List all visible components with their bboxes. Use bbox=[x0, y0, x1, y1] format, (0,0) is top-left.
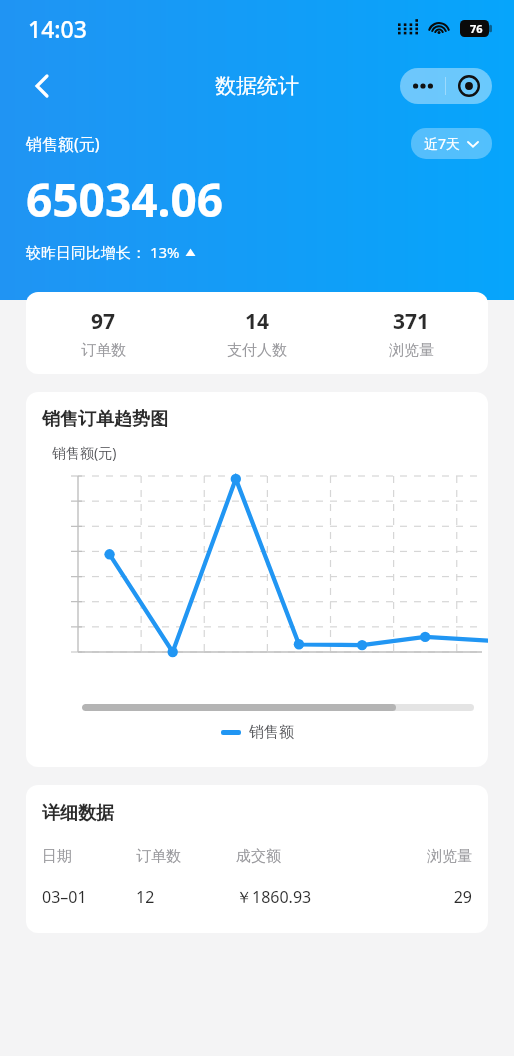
button[interactable]: 03–01 bbox=[26, 886, 488, 908]
button[interactable]: Target bbox=[446, 68, 492, 104]
staticText: 订单数 bbox=[81, 341, 126, 360]
staticText: 近7天 bbox=[424, 134, 461, 153]
staticText: 371 bbox=[393, 307, 430, 336]
button[interactable]: 14 bbox=[180, 292, 334, 374]
staticText: 03–01 bbox=[42, 886, 136, 908]
staticText: 14 bbox=[245, 307, 270, 336]
button[interactable]: Back bbox=[22, 66, 62, 106]
staticText: 销售额 bbox=[249, 723, 294, 742]
staticText: ￥1860.93 bbox=[236, 886, 381, 908]
staticText: 日期 bbox=[42, 847, 136, 866]
button[interactable]: 近7天 bbox=[411, 128, 492, 159]
staticText: 浏览量 bbox=[381, 847, 472, 866]
staticText: 76 bbox=[470, 21, 483, 36]
button[interactable]: More options bbox=[400, 68, 445, 104]
staticText: 12 bbox=[136, 886, 236, 908]
staticText: 销售订单趋势图 bbox=[42, 408, 168, 431]
staticText: 数据统计 bbox=[215, 73, 299, 99]
staticText: 65034.06 bbox=[26, 168, 224, 231]
staticText: 14:03 bbox=[28, 13, 87, 44]
staticText: 详细数据 bbox=[42, 802, 114, 825]
button[interactable]: 371 bbox=[334, 292, 488, 374]
staticText: 订单数 bbox=[136, 847, 236, 866]
staticText: 销售额(元) bbox=[52, 443, 117, 462]
staticText: 97 bbox=[91, 307, 116, 336]
staticText: 浏览量 bbox=[389, 341, 434, 360]
staticText: 较昨日同比增长： 13% bbox=[26, 242, 180, 262]
button[interactable]: 97 bbox=[26, 292, 180, 374]
staticText: 成交额 bbox=[236, 847, 381, 866]
staticText: 29 bbox=[381, 886, 472, 908]
staticText: 销售额(元) bbox=[26, 133, 100, 155]
staticText: 支付人数 bbox=[227, 341, 287, 360]
